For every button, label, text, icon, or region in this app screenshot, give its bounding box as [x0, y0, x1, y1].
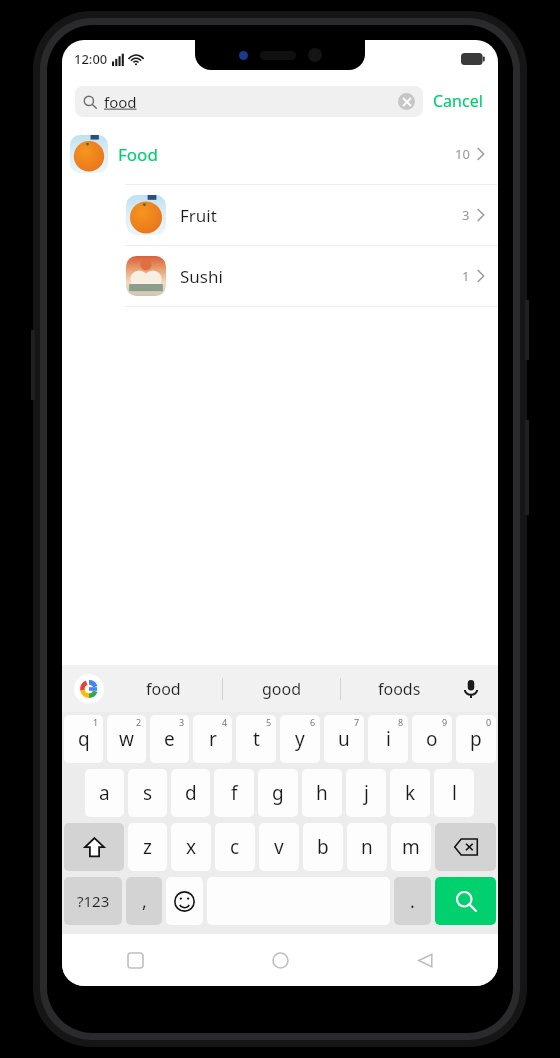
staticText: j	[364, 780, 369, 806]
button[interactable]: Recents	[62, 934, 208, 986]
staticText: ?123	[77, 891, 110, 911]
button[interactable]: .	[394, 877, 431, 925]
staticText: q	[78, 726, 90, 752]
staticText: foods	[378, 678, 421, 700]
button[interactable]: u	[324, 715, 364, 763]
staticText: t	[253, 726, 260, 752]
staticText: h	[316, 780, 328, 806]
button[interactable]: ,	[126, 877, 162, 925]
button[interactable]: i	[368, 715, 408, 763]
staticText: Cancel	[433, 90, 483, 112]
staticText: r	[209, 726, 217, 752]
staticText: 6	[310, 716, 316, 728]
button[interactable]: f	[214, 769, 254, 817]
staticText: 12:00	[74, 50, 108, 68]
staticText: m	[402, 834, 420, 860]
staticText: l	[452, 780, 457, 806]
button[interactable]: t	[236, 715, 276, 763]
staticText: i	[386, 726, 391, 752]
staticText: .	[410, 889, 415, 914]
button[interactable]: o	[412, 715, 452, 763]
staticText: 1	[462, 267, 470, 285]
staticText: 3	[179, 716, 185, 728]
staticText: g	[272, 780, 284, 806]
button[interactable]: w	[107, 715, 146, 763]
staticText: 7	[354, 716, 360, 728]
button[interactable]: p	[456, 715, 496, 763]
button[interactable]: j	[346, 769, 386, 817]
button[interactable]: Home	[208, 934, 353, 986]
button[interactable]: k	[390, 769, 430, 817]
staticText: v	[274, 834, 284, 860]
button[interactable]: foods	[341, 665, 458, 712]
button[interactable]: Google	[74, 674, 104, 704]
button[interactable]: Sushi	[62, 246, 498, 306]
button[interactable]: Search	[435, 877, 496, 925]
staticText: d	[185, 780, 197, 806]
button[interactable]: Shift	[64, 823, 124, 871]
staticText: Fruit	[180, 204, 217, 227]
button[interactable]: a	[85, 769, 124, 817]
button[interactable]: good	[223, 665, 340, 712]
button[interactable]: g	[258, 769, 298, 817]
staticText: ,	[142, 889, 147, 914]
button[interactable]: Emoji	[166, 877, 203, 925]
button[interactable]: Back	[353, 934, 498, 986]
staticText: 3	[462, 206, 470, 224]
staticText: w	[119, 726, 134, 752]
button[interactable]: e	[150, 715, 189, 763]
button[interactable]: n	[347, 823, 387, 871]
staticText: 9	[442, 716, 448, 728]
button[interactable]: s	[128, 769, 167, 817]
staticText: u	[338, 726, 350, 752]
button[interactable]: Cancel	[423, 90, 485, 112]
staticText: 8	[398, 716, 404, 728]
staticText: c	[230, 834, 240, 860]
button[interactable]: ?123	[64, 877, 122, 925]
staticText: p	[470, 726, 482, 752]
button[interactable]: v	[259, 823, 299, 871]
staticText: 1	[93, 716, 99, 728]
staticText: a	[99, 780, 110, 806]
staticText: s	[143, 780, 153, 806]
staticText: n	[361, 834, 373, 860]
button[interactable]: food	[75, 86, 423, 117]
button[interactable]: y	[280, 715, 320, 763]
button[interactable]: z	[128, 823, 167, 871]
staticText: food	[146, 678, 181, 700]
button[interactable]: b	[303, 823, 343, 871]
button[interactable]: Backspace	[435, 823, 496, 871]
button[interactable]: Fruit	[62, 185, 498, 245]
button[interactable]: c	[215, 823, 255, 871]
staticText: y	[295, 726, 305, 752]
staticText: Sushi	[180, 265, 223, 288]
button[interactable]: food	[104, 665, 222, 712]
button[interactable]: Food	[62, 124, 498, 184]
button[interactable]: Clear search	[398, 93, 415, 110]
staticText: food	[104, 92, 137, 112]
button[interactable]: l	[434, 769, 474, 817]
staticText: z	[143, 834, 152, 860]
staticText: 10	[455, 145, 470, 163]
button[interactable]: d	[171, 769, 210, 817]
staticText: Food	[118, 143, 158, 166]
button[interactable]: r	[193, 715, 232, 763]
staticText: e	[164, 726, 175, 752]
staticText: f	[231, 780, 238, 806]
button[interactable]: x	[171, 823, 211, 871]
button[interactable]: m	[391, 823, 431, 871]
staticText: 2	[136, 716, 142, 728]
button[interactable]: q	[64, 715, 103, 763]
staticText: 5	[266, 716, 272, 728]
staticText: good	[262, 678, 302, 700]
button[interactable]: Voice input	[458, 676, 484, 702]
staticText: k	[405, 780, 416, 806]
button[interactable]: h	[302, 769, 342, 817]
staticText: 4	[222, 716, 228, 728]
staticText: b	[317, 834, 329, 860]
staticText: 0	[486, 716, 492, 728]
staticText: o	[426, 726, 438, 752]
staticText: x	[186, 834, 197, 860]
